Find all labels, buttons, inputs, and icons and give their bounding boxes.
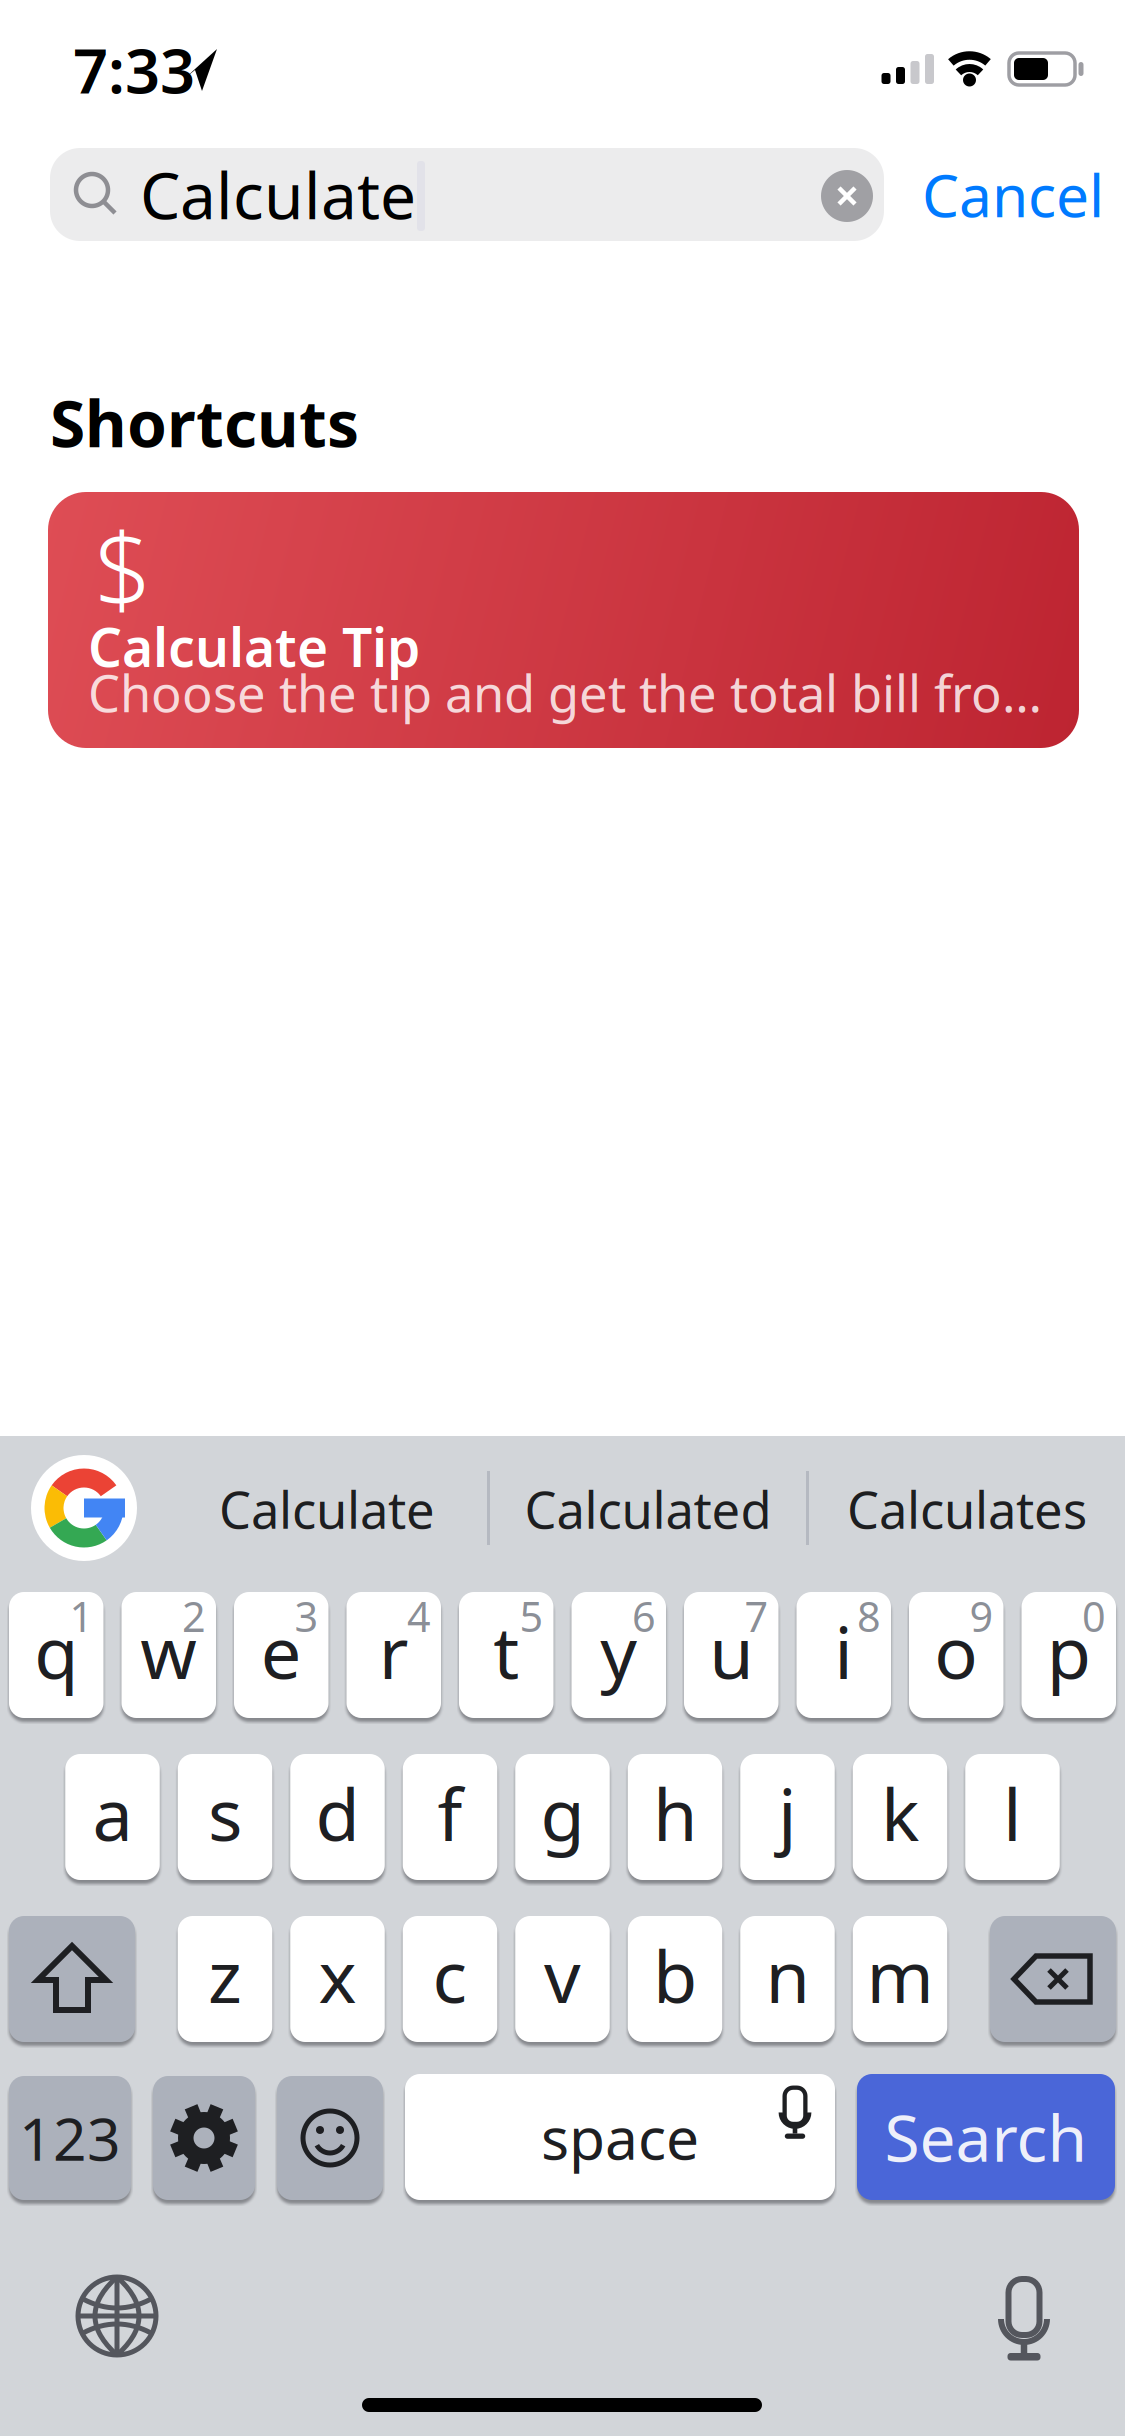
staticText: 0 bbox=[1082, 1589, 1106, 1643]
staticText: Calculate bbox=[219, 1475, 435, 1543]
staticText: n bbox=[765, 1927, 809, 2023]
staticText: o bbox=[934, 1603, 978, 1699]
button[interactable]: Calculate bbox=[219, 1475, 435, 1543]
button[interactable]: Next keyboard bbox=[74, 2273, 160, 2359]
button[interactable]: m bbox=[853, 1916, 947, 2042]
staticText: k bbox=[881, 1765, 919, 1861]
staticText: p bbox=[1047, 1603, 1091, 1699]
staticText: r bbox=[379, 1603, 409, 1699]
button[interactable]: p bbox=[1021, 1592, 1116, 1718]
button[interactable]: e bbox=[234, 1592, 328, 1718]
button[interactable]: Cancel bbox=[922, 148, 1104, 241]
staticText: d bbox=[315, 1765, 359, 1861]
button[interactable]: z bbox=[178, 1916, 272, 2042]
button[interactable]: v bbox=[515, 1916, 610, 2042]
button[interactable]: Emoji bbox=[277, 2076, 383, 2200]
staticText: q bbox=[34, 1603, 78, 1699]
staticText: Calculates bbox=[847, 1475, 1087, 1543]
staticText: u bbox=[709, 1603, 753, 1699]
staticText: 7:33 bbox=[73, 29, 195, 110]
button[interactable]: t bbox=[459, 1592, 553, 1718]
staticText: y bbox=[600, 1603, 637, 1699]
staticText: Calculated bbox=[524, 1475, 771, 1543]
staticText: w bbox=[140, 1603, 197, 1699]
button[interactable]: a bbox=[65, 1754, 160, 1880]
button[interactable]: h bbox=[628, 1754, 722, 1880]
staticText: 5 bbox=[519, 1589, 543, 1643]
button[interactable]: i bbox=[796, 1592, 891, 1718]
button[interactable]: r bbox=[346, 1592, 441, 1718]
staticText: 4 bbox=[407, 1589, 431, 1643]
button[interactable]: g bbox=[515, 1754, 610, 1880]
staticText: 1 bbox=[69, 1589, 93, 1643]
staticText: 123 bbox=[19, 2099, 121, 2177]
staticText: s bbox=[208, 1765, 242, 1861]
button[interactable]: b bbox=[628, 1916, 722, 2042]
button[interactable]: Google search bbox=[31, 1455, 137, 1561]
button[interactable]: Dictation bbox=[981, 2275, 1067, 2361]
staticText: 3 bbox=[294, 1589, 318, 1643]
button[interactable]: y bbox=[571, 1592, 666, 1718]
staticText: Shortcuts bbox=[50, 380, 359, 465]
button[interactable]: n bbox=[740, 1916, 835, 2042]
button[interactable]: q bbox=[9, 1592, 103, 1718]
staticText: 8 bbox=[857, 1589, 881, 1643]
staticText: space bbox=[541, 2098, 699, 2176]
button[interactable]: Calculate bbox=[50, 148, 884, 241]
staticText: e bbox=[261, 1603, 302, 1699]
staticText: $ bbox=[94, 500, 152, 635]
button[interactable]: Calculates bbox=[847, 1475, 1087, 1543]
button[interactable]: k bbox=[853, 1754, 947, 1880]
staticText: a bbox=[92, 1765, 132, 1861]
staticText: j bbox=[778, 1765, 797, 1861]
staticText: Calculate bbox=[140, 152, 416, 237]
button[interactable]: Numbers bbox=[9, 2076, 131, 2200]
button[interactable]: u bbox=[684, 1592, 778, 1718]
staticText: 7 bbox=[744, 1589, 768, 1643]
button[interactable]: Delete bbox=[990, 1916, 1116, 2042]
staticText: Choose the tip and get the total bill fr… bbox=[88, 659, 1076, 726]
button[interactable]: d bbox=[290, 1754, 385, 1880]
button[interactable]: $ bbox=[48, 492, 1079, 748]
staticText: m bbox=[866, 1927, 933, 2023]
staticText: x bbox=[318, 1927, 356, 2023]
button[interactable]: Settings bbox=[153, 2076, 255, 2200]
button[interactable]: x bbox=[290, 1916, 385, 2042]
button[interactable]: c bbox=[403, 1916, 497, 2042]
staticText: Calculate Tip bbox=[88, 611, 420, 682]
button[interactable]: w bbox=[121, 1592, 216, 1718]
button[interactable]: Calculated bbox=[524, 1475, 771, 1543]
staticText: c bbox=[432, 1927, 467, 2023]
staticText: Search bbox=[884, 2094, 1087, 2179]
button[interactable]: s bbox=[178, 1754, 272, 1880]
staticText: 6 bbox=[632, 1589, 656, 1643]
staticText: g bbox=[540, 1765, 584, 1861]
button[interactable]: l bbox=[965, 1754, 1060, 1880]
staticText: Cancel bbox=[922, 155, 1104, 233]
staticText: f bbox=[437, 1765, 462, 1861]
staticText: h bbox=[653, 1765, 697, 1861]
staticText: 9 bbox=[969, 1589, 993, 1643]
button[interactable]: j bbox=[740, 1754, 835, 1880]
button[interactable]: space bbox=[405, 2074, 835, 2200]
staticText: b bbox=[653, 1927, 697, 2023]
staticText: l bbox=[1003, 1765, 1022, 1861]
staticText: z bbox=[208, 1927, 242, 2023]
staticText: v bbox=[544, 1927, 581, 2023]
button[interactable]: o bbox=[909, 1592, 1003, 1718]
button[interactable]: Clear text bbox=[821, 170, 873, 222]
staticText: t bbox=[493, 1603, 519, 1699]
staticText: i bbox=[834, 1603, 853, 1699]
button[interactable]: Shift bbox=[9, 1916, 135, 2042]
staticText: 2 bbox=[182, 1589, 206, 1643]
button[interactable]: f bbox=[403, 1754, 497, 1880]
button[interactable]: Search bbox=[857, 2074, 1115, 2200]
